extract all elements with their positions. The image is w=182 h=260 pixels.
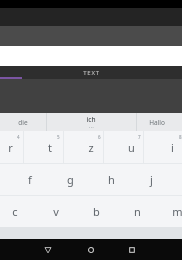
staticText: 5	[57, 134, 60, 140]
staticText: u	[128, 140, 135, 155]
button[interactable]: v	[40, 195, 72, 227]
button[interactable]: die	[7, 113, 39, 131]
button[interactable]: n	[121, 195, 153, 227]
button[interactable]: r	[0, 131, 26, 163]
staticText: die	[18, 118, 28, 127]
button[interactable]: TEXT	[0, 66, 182, 79]
staticText: 6	[98, 134, 101, 140]
button[interactable]: m	[161, 195, 182, 227]
button[interactable]: i	[156, 131, 182, 163]
button[interactable]: h	[95, 163, 127, 195]
staticText: z	[88, 140, 94, 155]
button[interactable]: b	[80, 195, 112, 227]
staticText: r	[8, 140, 13, 155]
staticText: 7	[138, 134, 141, 140]
button[interactable]: Recents	[120, 239, 144, 260]
button[interactable]: Back	[36, 239, 60, 260]
button[interactable]: u	[115, 131, 147, 163]
button[interactable]: f	[14, 163, 46, 195]
button[interactable]: z	[75, 131, 107, 163]
staticText: f	[28, 172, 32, 187]
button[interactable]: t	[34, 131, 66, 163]
staticText: 4	[17, 134, 20, 140]
button[interactable]: Hallo	[141, 113, 173, 131]
staticText: c	[12, 204, 18, 219]
staticText: h	[108, 172, 115, 187]
button[interactable]: ich	[75, 113, 107, 131]
button[interactable]: Home	[79, 239, 103, 260]
staticText: n	[134, 204, 141, 219]
staticText: ⋯	[89, 124, 94, 130]
staticText: i	[171, 140, 174, 155]
staticText: TEXT	[83, 69, 100, 77]
staticText: v	[53, 204, 59, 219]
staticText: b	[93, 204, 100, 219]
staticText: ich	[86, 115, 96, 124]
staticText: j	[150, 172, 153, 187]
staticText: t	[48, 140, 52, 155]
button[interactable]: c	[0, 195, 31, 227]
staticText: Hallo	[149, 118, 165, 127]
button[interactable]: g	[54, 163, 86, 195]
staticText: 8	[179, 134, 182, 140]
button[interactable]: j	[135, 163, 167, 195]
staticText: g	[67, 172, 74, 187]
staticText: m	[172, 204, 182, 219]
